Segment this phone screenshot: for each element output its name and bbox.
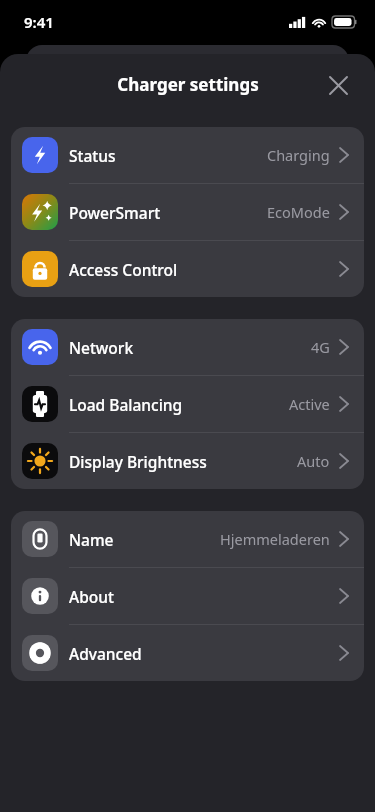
staticText: Auto	[297, 451, 330, 471]
button[interactable]: Display Brightness	[11, 433, 364, 489]
button[interactable]: PowerSmart	[11, 184, 364, 241]
staticText: Charger settings	[117, 73, 259, 96]
staticText: 9:41	[24, 12, 54, 32]
button[interactable]: Close	[321, 68, 355, 102]
button[interactable]: Network	[11, 319, 364, 376]
staticText: EcoMode	[267, 202, 330, 222]
staticText: Network	[69, 337, 311, 358]
button[interactable]: Access Control	[11, 241, 364, 297]
button[interactable]: Load Balancing	[11, 376, 364, 433]
staticText: Charging	[267, 145, 330, 165]
staticText: Advanced	[69, 643, 340, 664]
staticText: Access Control	[69, 259, 340, 280]
staticText: 4G	[311, 337, 330, 357]
staticText: Hjemmeladeren	[220, 529, 330, 549]
staticText: Name	[69, 529, 220, 550]
staticText: About	[69, 586, 340, 607]
staticText: Active	[289, 394, 330, 414]
staticText: Status	[69, 145, 267, 166]
button[interactable]: Name	[11, 511, 364, 568]
button[interactable]: About	[11, 568, 364, 625]
button[interactable]: Status	[11, 127, 364, 184]
staticText: Display Brightness	[69, 451, 297, 472]
staticText: Load Balancing	[69, 394, 289, 415]
staticText: PowerSmart	[69, 202, 267, 223]
button[interactable]: Advanced	[11, 625, 364, 681]
